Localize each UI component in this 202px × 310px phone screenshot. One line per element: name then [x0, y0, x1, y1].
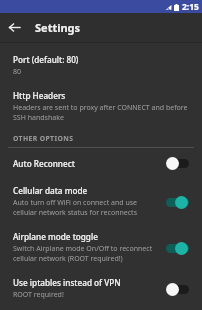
staticText: ROOT required!	[13, 290, 64, 300]
staticText: 2:15	[182, 1, 199, 13]
button[interactable]: Use iptables instead of VPN	[0, 271, 202, 307]
button[interactable]: Port (default: 80)	[0, 48, 202, 84]
staticText: Auto Reconnect	[13, 158, 75, 169]
button[interactable]: Toggle on	[162, 239, 192, 257]
staticText: Auto turn off WiFi on connect and use ce…	[13, 198, 156, 218]
button[interactable]: Cellular data mode	[0, 179, 202, 225]
staticText: Cellular data mode	[13, 185, 88, 196]
button[interactable]: Auto Reconnect	[0, 148, 202, 179]
button[interactable]: Airplane mode toggle	[0, 225, 202, 271]
staticText: Use iptables instead of VPN	[13, 277, 121, 288]
staticText: Settings	[35, 20, 81, 35]
button[interactable]: Toggle off	[162, 280, 192, 298]
staticText: Airplane mode toggle	[13, 231, 98, 242]
button[interactable]: Back	[0, 13, 29, 42]
staticText: Port (default: 80)	[13, 54, 79, 65]
staticText: 80	[13, 67, 22, 77]
staticText: Switch Airplane mode On/Off to reconnect…	[13, 244, 156, 264]
button[interactable]: Http Headers	[0, 84, 202, 130]
staticText: Headers are sent to proxy after CONNECT …	[13, 103, 189, 123]
button[interactable]: Toggle on	[162, 193, 192, 211]
staticText: OTHER OPTIONS	[13, 134, 74, 143]
staticText: Http Headers	[13, 90, 66, 101]
button[interactable]: Toggle off	[162, 154, 192, 172]
